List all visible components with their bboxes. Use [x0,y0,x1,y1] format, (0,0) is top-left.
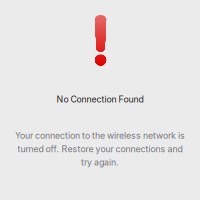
staticText: No Connection Found [56,94,143,104]
staticText: try again. [81,157,119,167]
staticText: turned off. Restore your connections and [17,144,182,154]
staticText: Your connection to the wireless network … [15,130,185,141]
